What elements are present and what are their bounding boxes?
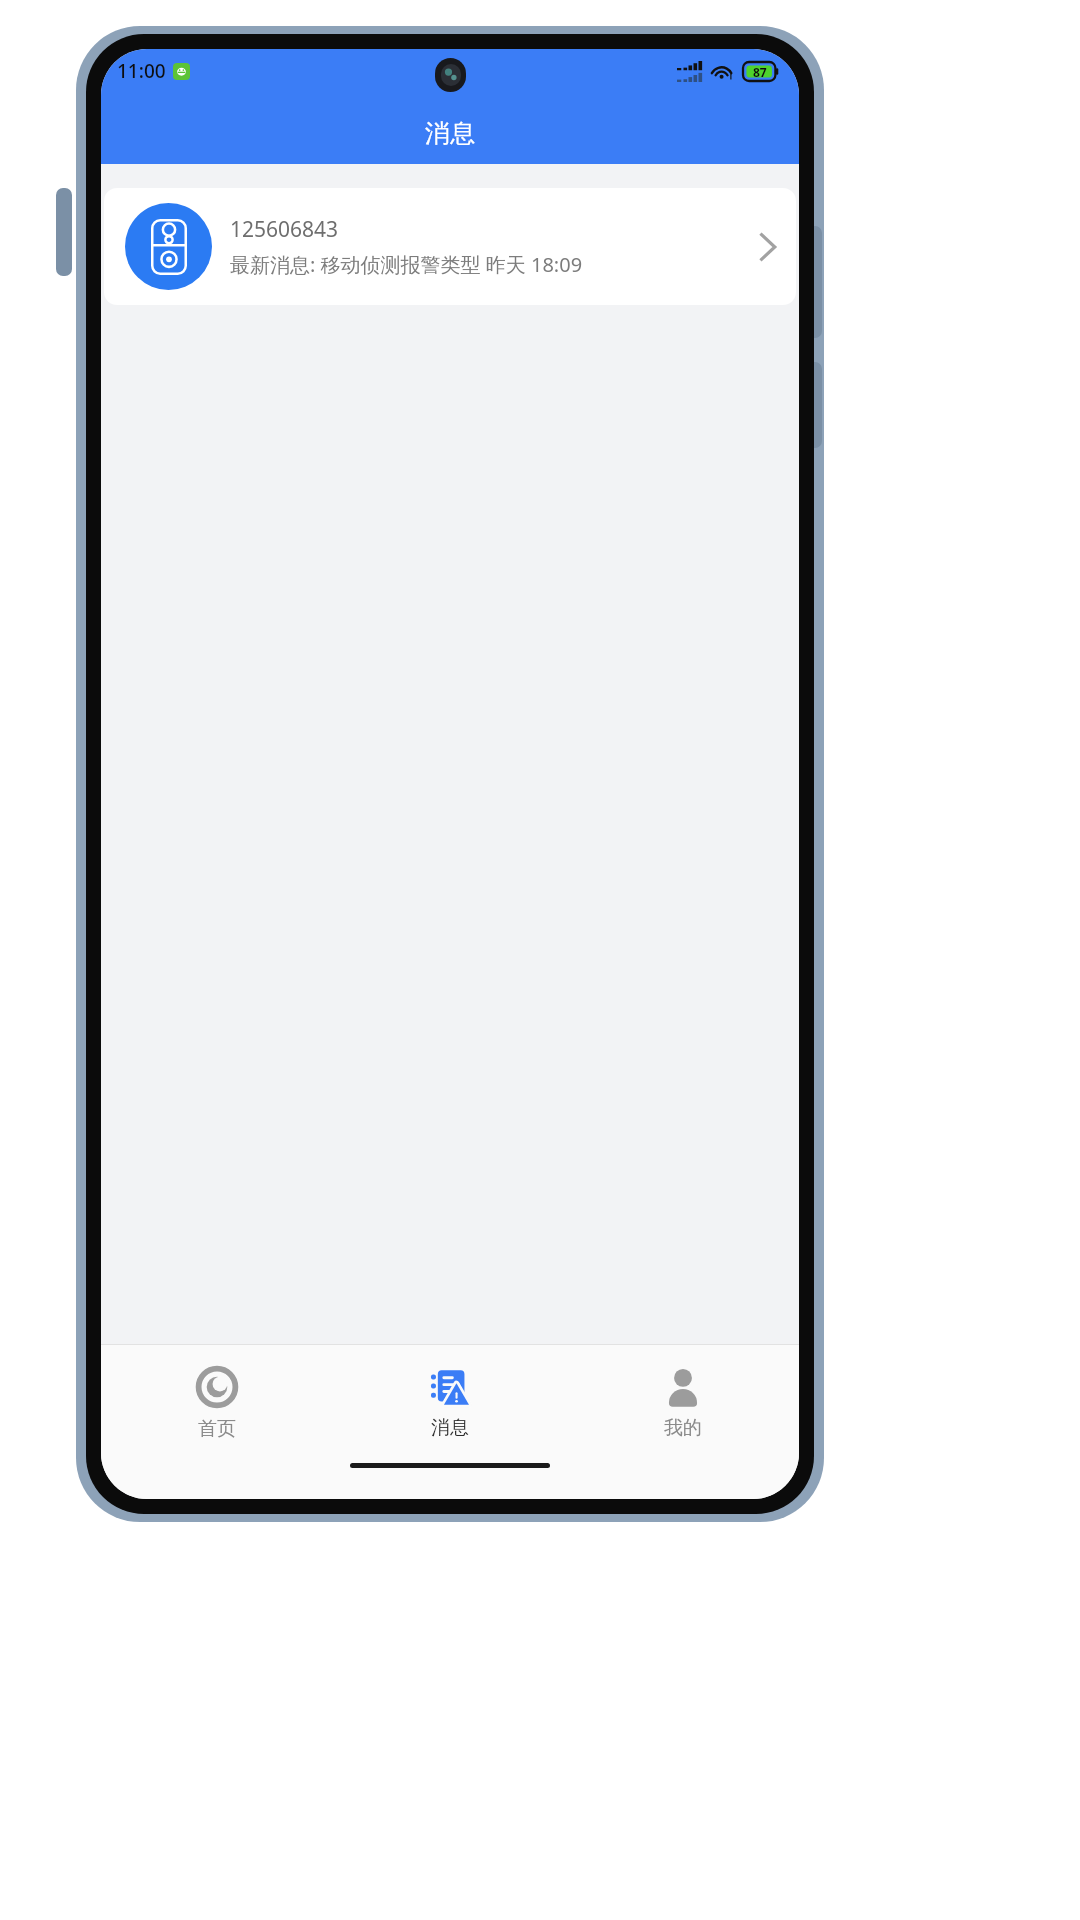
staticText: 消息 — [425, 118, 475, 149]
staticText: 87 — [753, 64, 767, 80]
button[interactable]: 消息 — [333, 1345, 566, 1463]
button[interactable]: 我的 — [566, 1345, 799, 1463]
button[interactable]: 首页 — [101, 1345, 333, 1463]
other: 我的 — [664, 1368, 702, 1406]
other: 消息 — [431, 1368, 469, 1406]
staticText: 消息 — [431, 1416, 469, 1440]
staticText: 11:00 — [117, 58, 166, 84]
staticText: 我的 — [664, 1416, 702, 1440]
staticText: 最新消息: 移动侦测报警类型 昨天 18:09 — [230, 251, 583, 278]
other: 首页 — [197, 1367, 237, 1407]
staticText: 125606843 — [230, 215, 339, 244]
staticText: 首页 — [198, 1417, 236, 1441]
button[interactable]: 125606843 — [104, 188, 796, 305]
